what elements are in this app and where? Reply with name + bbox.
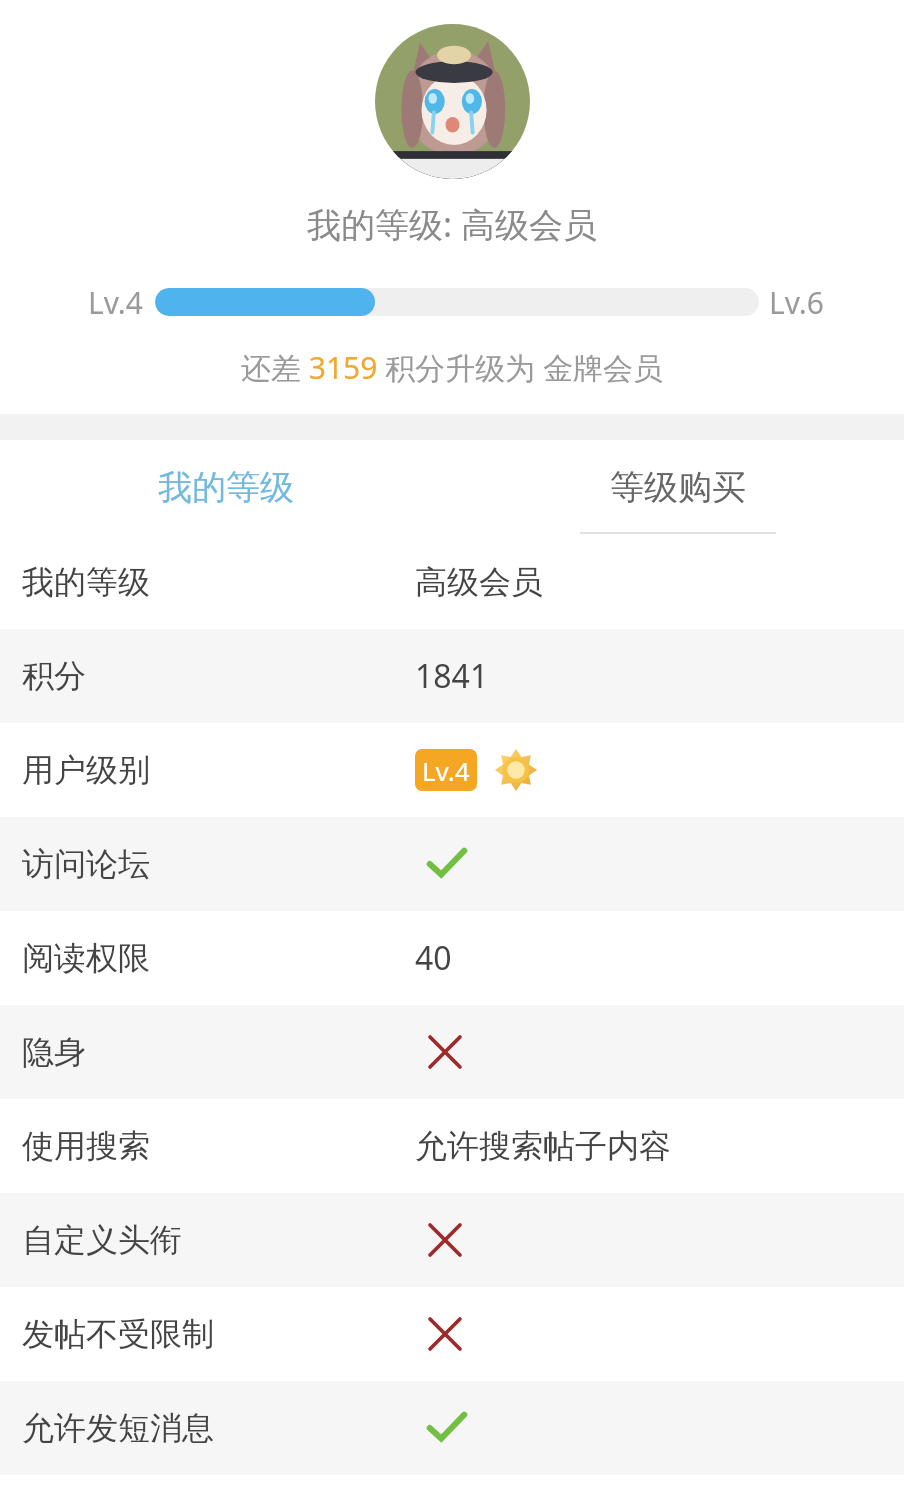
button[interactable]: 使用搜索 xyxy=(0,1099,904,1193)
staticText: 积分 xyxy=(22,656,86,696)
button[interactable]: 我的等级 xyxy=(0,440,452,535)
staticText: 我的等级 xyxy=(158,466,294,509)
staticText: 等级购买 xyxy=(610,466,746,509)
button[interactable]: 发帖不受限制 xyxy=(0,1287,904,1381)
staticText: 还差 3159 积分升级为 金牌会员 xyxy=(241,347,664,388)
other: Level badge xyxy=(495,749,537,791)
button[interactable]: 自定义头衔 xyxy=(0,1193,904,1287)
staticText: 访问论坛 xyxy=(22,844,150,884)
staticText: 隐身 xyxy=(22,1032,86,1072)
button[interactable]: 访问论坛 xyxy=(0,817,904,911)
staticText: 我的等级: 高级会员 xyxy=(307,201,597,247)
staticText: 用户级别 xyxy=(22,750,150,790)
staticText: 发帖不受限制 xyxy=(22,1314,214,1354)
staticText: 40 xyxy=(415,936,452,980)
staticText: 允许搜索帖子内容 xyxy=(415,1126,671,1166)
staticText: 阅读权限 xyxy=(22,938,150,978)
staticText: 使用搜索 xyxy=(22,1126,150,1166)
staticText: Lv.4 xyxy=(422,753,470,788)
staticText: 我的等级 xyxy=(22,562,150,602)
staticText: 1841 xyxy=(415,654,489,698)
other: Yes xyxy=(423,840,471,888)
other: Yes xyxy=(423,1404,471,1452)
staticText: 高级会员 xyxy=(415,562,543,602)
other: Avatar xyxy=(375,24,530,179)
staticText: 自定义头衔 xyxy=(22,1220,182,1260)
button[interactable]: 阅读权限 xyxy=(0,911,904,1005)
button[interactable]: 用户级别 xyxy=(0,723,904,817)
button[interactable]: 积分 xyxy=(0,629,904,723)
staticText: Lv.4 xyxy=(88,282,143,323)
other: No xyxy=(423,1030,467,1074)
button[interactable]: 等级购买 xyxy=(452,440,904,535)
button[interactable]: 我的等级 xyxy=(0,535,904,629)
other: No xyxy=(423,1218,467,1262)
button[interactable]: 允许发短消息 xyxy=(0,1381,904,1475)
button[interactable]: 隐身 xyxy=(0,1005,904,1099)
other: No xyxy=(423,1312,467,1356)
staticText: Lv.6 xyxy=(769,282,824,323)
staticText: 允许发短消息 xyxy=(22,1408,214,1448)
